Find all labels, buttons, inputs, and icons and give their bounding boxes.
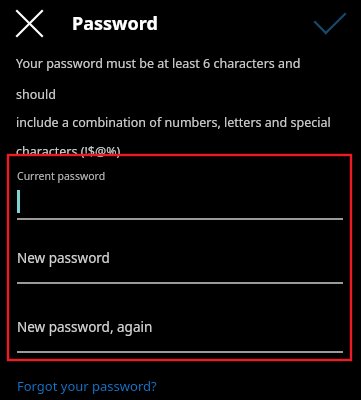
button[interactable]: Forgot your password? xyxy=(10,372,164,400)
staticText: characters (!$@%). xyxy=(16,143,124,160)
staticText: Forgot your password? xyxy=(17,377,157,395)
button[interactable]: Confirm xyxy=(310,3,350,43)
staticText: New password, again xyxy=(17,318,153,336)
button[interactable]: Current password xyxy=(12,162,346,224)
button[interactable]: Close xyxy=(10,4,48,42)
button[interactable]: New password, again xyxy=(12,306,346,356)
staticText: New password xyxy=(17,249,110,267)
staticText: Your password must be at least 6 charact… xyxy=(16,55,341,102)
staticText: Current password xyxy=(17,169,106,183)
button[interactable]: New password xyxy=(12,236,346,286)
staticText: include a combination of numbers, letter… xyxy=(16,114,331,131)
staticText: Password xyxy=(72,11,158,36)
